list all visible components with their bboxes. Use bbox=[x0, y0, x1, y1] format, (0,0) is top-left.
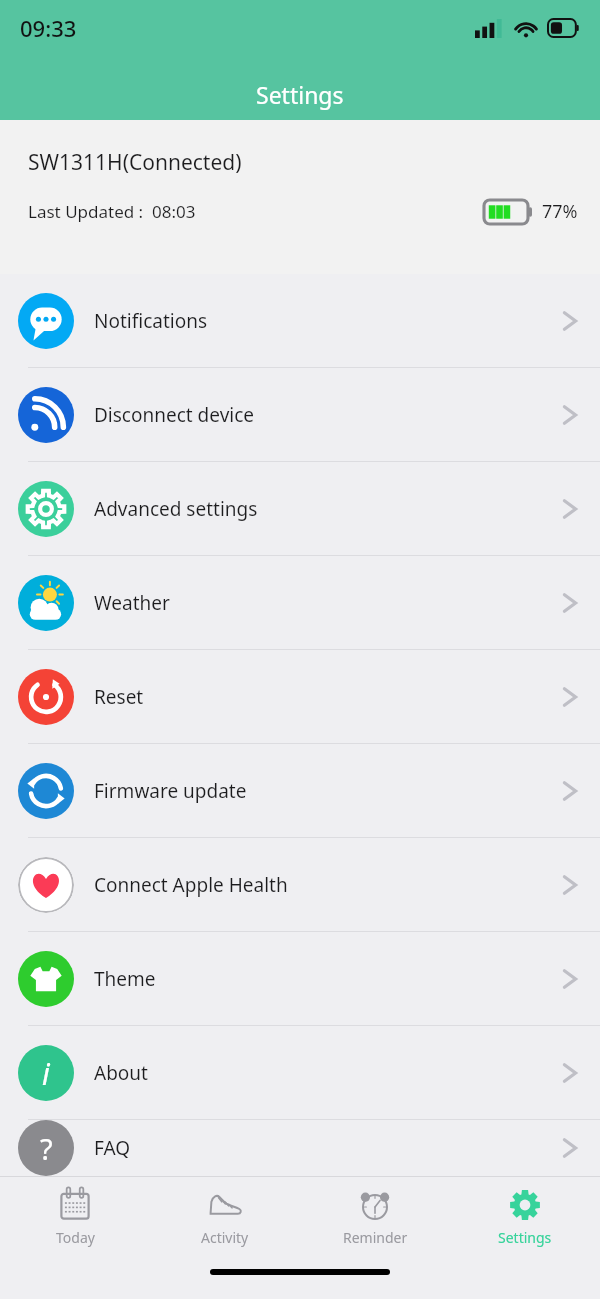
staticText: Theme bbox=[94, 966, 156, 992]
staticText: SW1311H(Connected) bbox=[28, 148, 242, 177]
button[interactable]: Activity bbox=[150, 1177, 300, 1257]
staticText: Firmware update bbox=[94, 778, 247, 804]
button[interactable]: Theme bbox=[0, 932, 600, 1025]
button[interactable]: ? bbox=[0, 1120, 600, 1176]
staticText: FAQ bbox=[94, 1135, 131, 1161]
staticText: Reminder bbox=[343, 1228, 408, 1247]
staticText: Connect Apple Health bbox=[94, 872, 288, 898]
staticText: Reset bbox=[94, 684, 144, 710]
button[interactable]: Advanced settings bbox=[0, 462, 600, 555]
button[interactable]: Connect Apple Health bbox=[0, 838, 600, 931]
staticText: Settings bbox=[256, 79, 344, 110]
button[interactable]: Notifications bbox=[0, 274, 600, 367]
button[interactable]: Disconnect device bbox=[0, 368, 600, 461]
button[interactable]: Reminder bbox=[300, 1177, 450, 1257]
staticText: Weather bbox=[94, 590, 170, 616]
button[interactable]: Today bbox=[0, 1177, 150, 1257]
button[interactable]: i bbox=[0, 1026, 600, 1119]
button[interactable]: Firmware update bbox=[0, 744, 600, 837]
staticText: Activity bbox=[201, 1228, 249, 1247]
staticText: Advanced settings bbox=[94, 496, 258, 522]
staticText: 09:33 bbox=[20, 13, 77, 43]
staticText: Settings bbox=[498, 1228, 552, 1247]
staticText: Disconnect device bbox=[94, 402, 255, 428]
button[interactable]: Weather bbox=[0, 556, 600, 649]
button[interactable]: Settings bbox=[450, 1177, 600, 1257]
staticText: ? bbox=[40, 1129, 53, 1168]
staticText: Today bbox=[56, 1228, 95, 1247]
staticText: 77% bbox=[542, 199, 578, 224]
staticText: Notifications bbox=[94, 308, 208, 334]
button[interactable]: Reset bbox=[0, 650, 600, 743]
staticText: About bbox=[94, 1060, 148, 1086]
staticText: Last Updated : 08:03 bbox=[28, 200, 196, 223]
staticText: i bbox=[42, 1053, 50, 1094]
